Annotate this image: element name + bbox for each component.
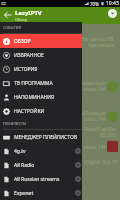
staticText: ТВ ПРОГРАММА xyxy=(14,80,53,87)
button[interactable]: All Radio xyxy=(0,158,82,172)
staticText: канал 144 xyxy=(84,144,106,150)
staticText: LazyIPTV xyxy=(15,9,42,17)
button[interactable]: ИЗБРАННОЕ xyxy=(0,48,82,62)
staticText: канал 144 xyxy=(84,86,106,92)
staticText: Обзор xyxy=(15,17,28,22)
staticText: All Radio xyxy=(14,162,35,169)
button[interactable]: НАСТРОЙКИ xyxy=(0,104,82,118)
staticText: 95.2010 xyxy=(100,132,117,138)
staticText: ПЛЕЙЛИСТЫ xyxy=(3,121,27,126)
staticText: СОБЫТИЯ xyxy=(3,25,22,30)
staticText: 4g.tv xyxy=(14,148,26,155)
staticText: программы xyxy=(88,42,114,48)
button[interactable]: ИСТОРИЯ xyxy=(0,62,82,76)
staticText: ИСТОРИЯ xyxy=(14,66,38,73)
staticText: 10:43 xyxy=(106,0,119,7)
button[interactable]: 4g.tv xyxy=(0,144,82,158)
button[interactable]: Exponet xyxy=(0,186,82,200)
staticText: МузРадио.ua xyxy=(77,110,106,116)
button[interactable]: ТВ ПРОГРАММА xyxy=(0,76,82,90)
staticText: English Club TV xyxy=(85,159,118,165)
button[interactable]: All Russian streams xyxy=(0,172,82,186)
staticText: Нет данных ТВ xyxy=(81,36,114,42)
staticText: канал 144 xyxy=(84,116,106,122)
staticText: НАСТРОЙКИ xyxy=(14,108,45,115)
button[interactable]: Back xyxy=(0,7,15,22)
button[interactable]: ОБЗОР xyxy=(0,34,82,48)
button[interactable]: НАПОМИНАНИЯ xyxy=(0,90,82,104)
staticText: All Russian streams xyxy=(14,176,60,183)
staticText: ТаганУГар/Sfar xyxy=(84,126,117,132)
staticText: Радионавигация xyxy=(69,80,106,86)
staticText: 70% xyxy=(90,1,99,7)
staticText: МЕНЕДЖЕР ПЛЕЙЛИСТОВ xyxy=(14,134,78,141)
staticText: НАПОМИНАНИЯ xyxy=(14,94,55,101)
staticText: ОБЗОР xyxy=(14,38,31,45)
button[interactable]: МЕНЕДЖЕР ПЛЕЙЛИСТОВ xyxy=(0,130,82,144)
staticText: ИЗБРАННОЕ xyxy=(14,52,44,59)
staticText: Exponet xyxy=(14,190,34,197)
button[interactable]: Expand xyxy=(108,9,117,18)
